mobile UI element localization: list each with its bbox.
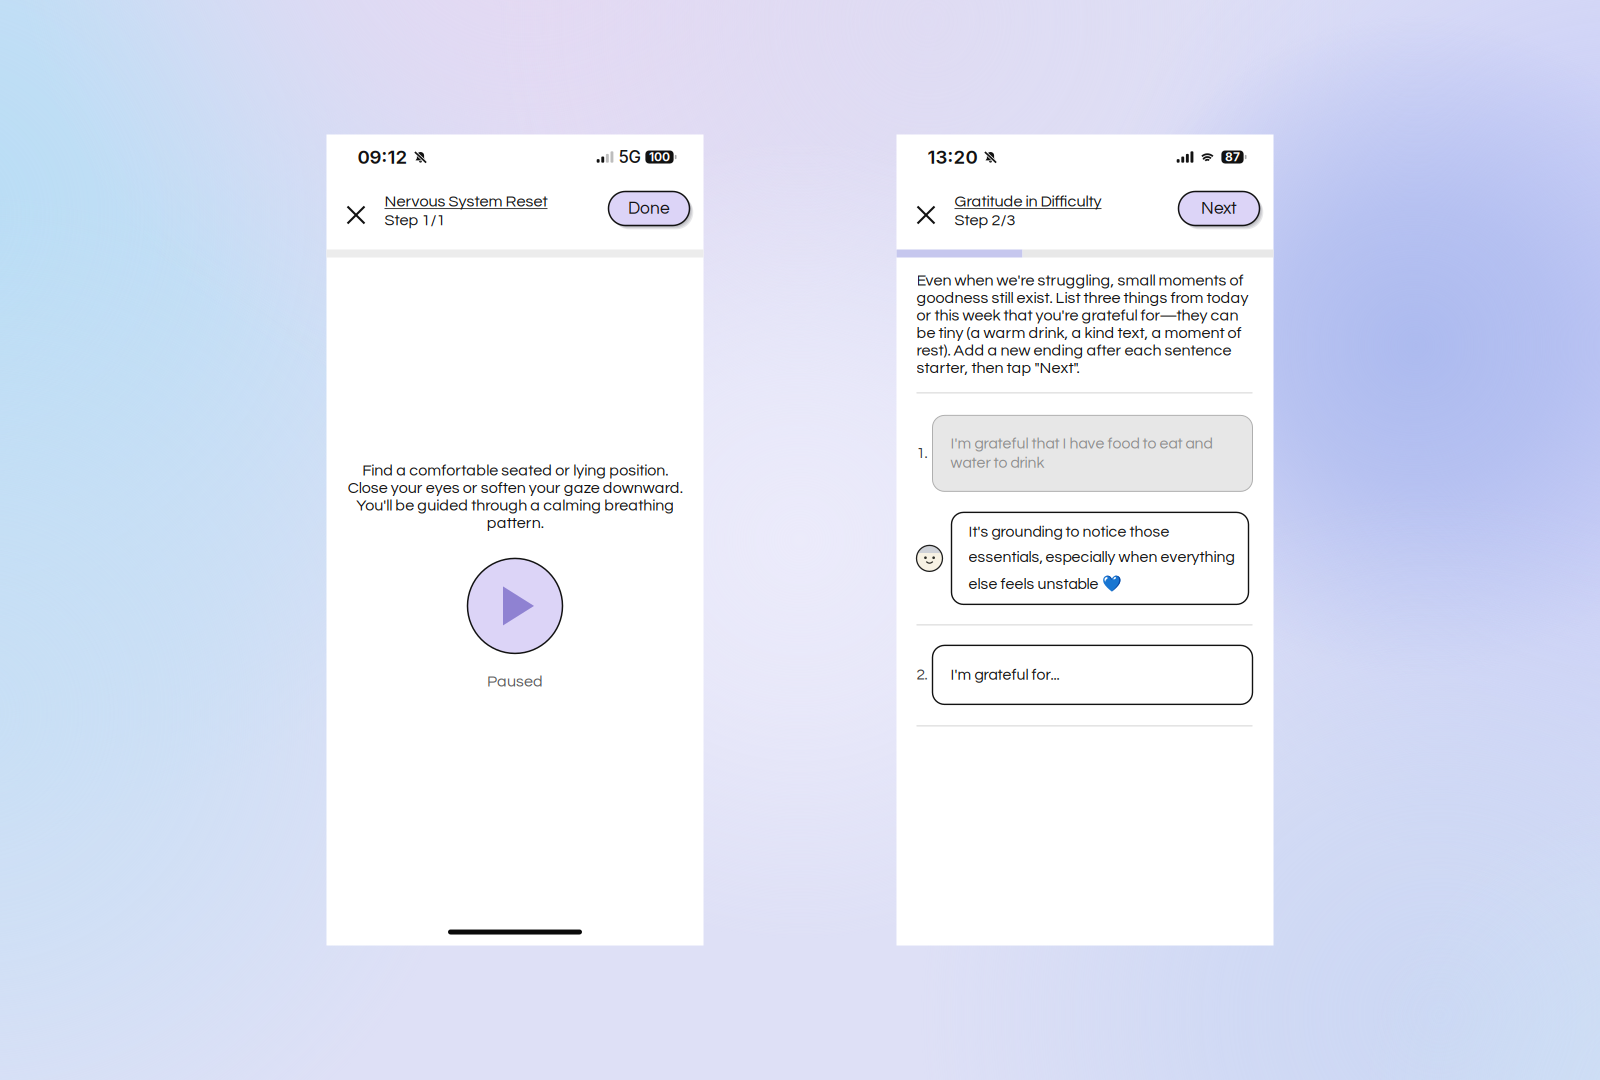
button[interactable]: Close — [905, 189, 946, 233]
staticText: Paused — [487, 673, 543, 690]
staticText: Step 1/1 — [384, 212, 445, 229]
button[interactable]: Play — [467, 558, 562, 653]
button[interactable]: Done — [608, 191, 694, 230]
staticText: 13:20 — [927, 146, 977, 168]
staticText: Gratitude in Difficulty — [954, 193, 1101, 210]
staticText: 1. — [916, 445, 927, 461]
staticText: Even when we're struggling, small moment… — [916, 272, 1248, 376]
staticText: I'm grateful that I have food to eat and… — [950, 436, 1212, 471]
staticText: Next — [1201, 200, 1237, 217]
staticText: I'm grateful for... — [950, 667, 1059, 683]
staticText: 5G — [618, 147, 640, 167]
staticText: It's grounding to notice those essential… — [968, 524, 1234, 593]
button[interactable]: Next — [1178, 191, 1264, 230]
staticText: Nervous System Reset — [384, 193, 547, 210]
staticText: Find a comfortable seated or lying posit… — [347, 462, 682, 531]
button[interactable]: Close — [335, 189, 376, 233]
button[interactable]: I'm grateful for... — [932, 645, 1252, 704]
staticText: 2. — [916, 667, 927, 683]
staticText: Done — [628, 200, 670, 217]
staticText: 09:12 — [357, 146, 407, 168]
staticText: 87 — [1225, 150, 1240, 164]
staticText: 100 — [649, 150, 670, 164]
staticText: Step 2/3 — [954, 212, 1015, 229]
